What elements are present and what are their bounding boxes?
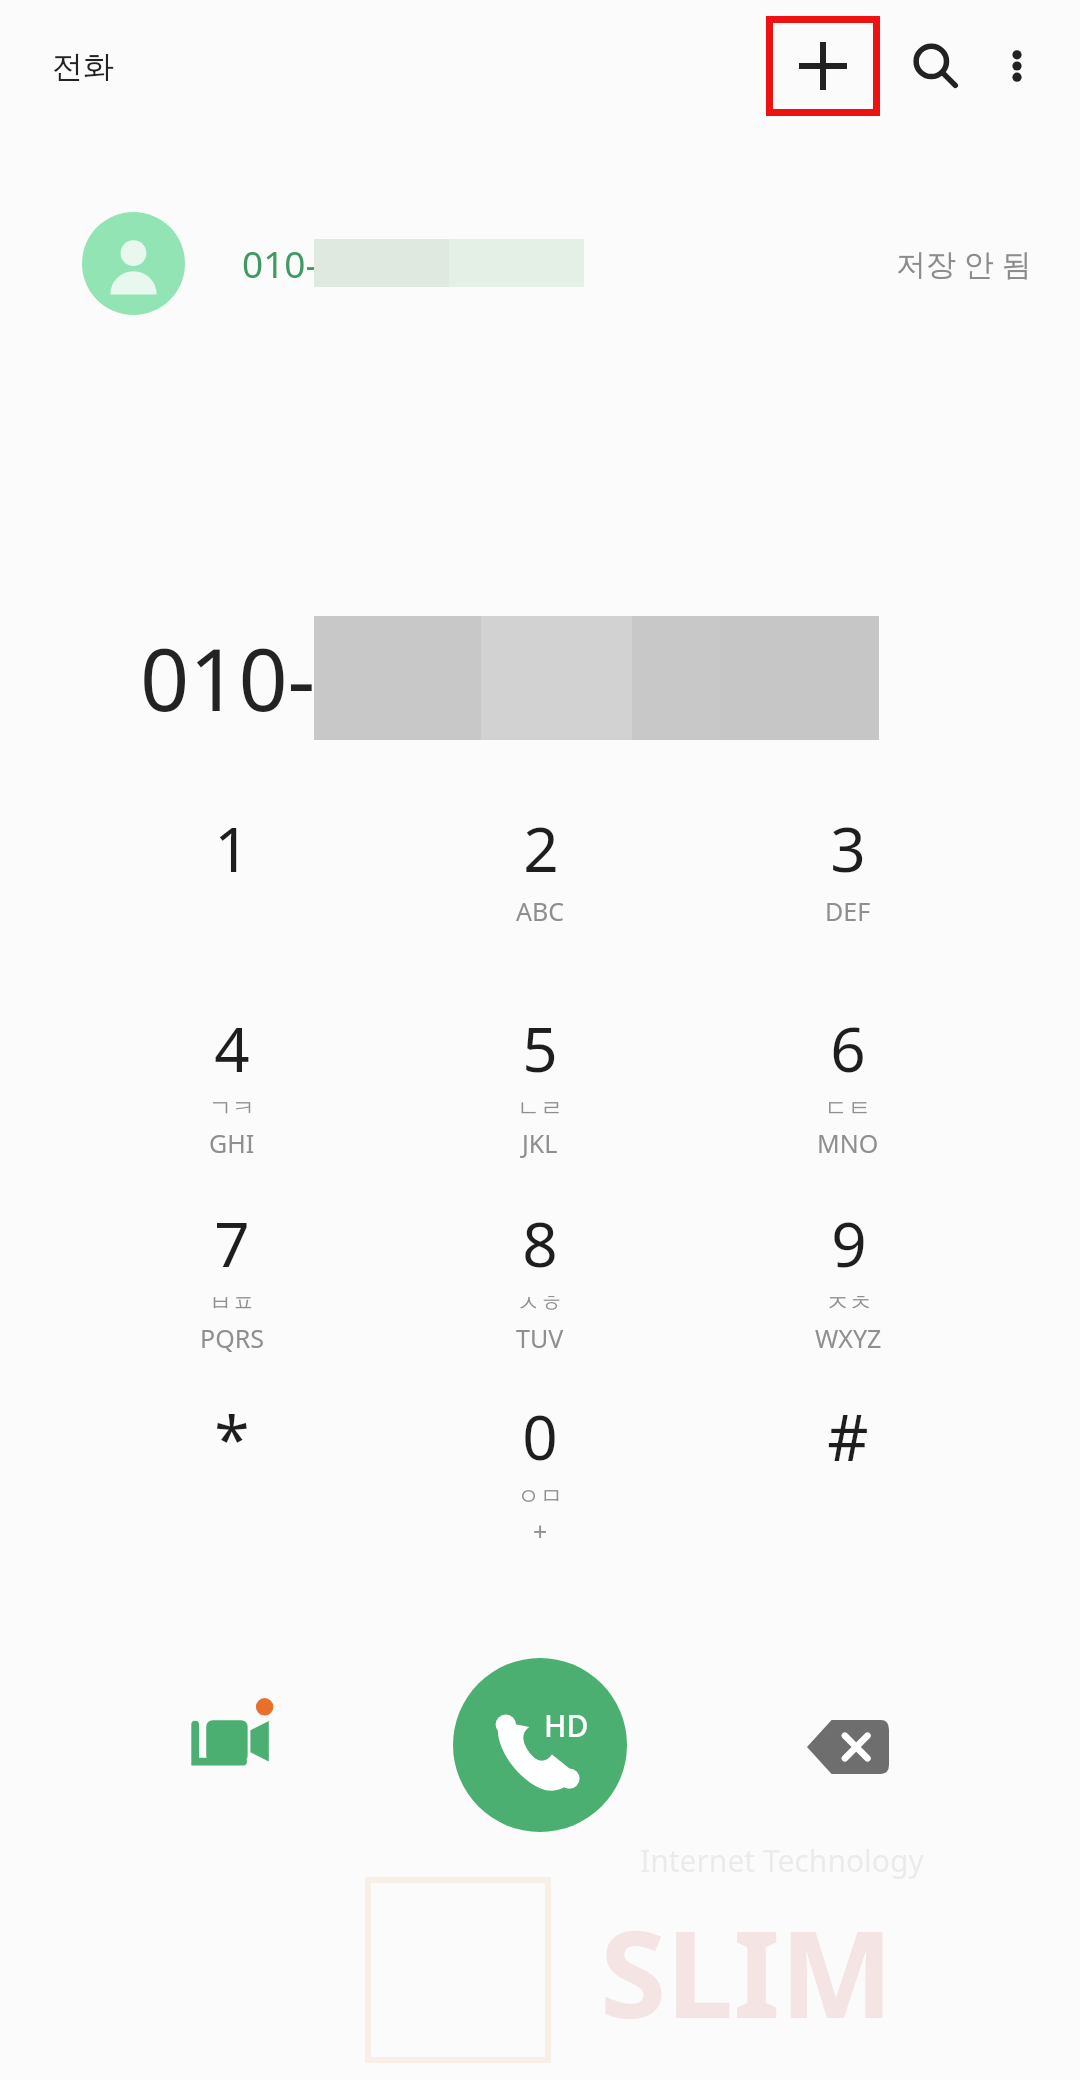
staticText: +	[533, 1514, 548, 1548]
button[interactable]: 6	[694, 1002, 1002, 1178]
button[interactable]: 010-	[0, 196, 1080, 330]
button[interactable]: Call	[453, 1658, 627, 1832]
staticText: 010-	[140, 619, 316, 736]
button[interactable]: 1	[78, 802, 386, 978]
staticText: *	[214, 1395, 250, 1482]
button[interactable]: 8	[386, 1197, 694, 1373]
staticText: ㄴㄹ	[517, 1094, 563, 1123]
staticText: #	[827, 1393, 869, 1480]
staticText: 9	[831, 1201, 867, 1285]
staticText: 5	[522, 1006, 558, 1090]
staticText: PQRS	[200, 1321, 264, 1355]
button[interactable]: Add contact	[766, 16, 880, 116]
staticText: ABC	[516, 894, 565, 928]
staticText: 6	[830, 1006, 866, 1090]
staticText: 2	[523, 806, 559, 890]
button[interactable]: *	[78, 1390, 386, 1566]
button[interactable]: 9	[694, 1197, 1002, 1373]
staticText: ㅈㅊ	[826, 1289, 872, 1318]
staticText: 3	[830, 806, 866, 890]
staticText: 4	[214, 1006, 250, 1090]
button[interactable]: Delete	[768, 1677, 928, 1817]
staticText: ㄱㅋ	[209, 1094, 255, 1123]
staticText: GHI	[209, 1126, 255, 1160]
staticText: HD	[544, 1705, 589, 1746]
button[interactable]: Video call	[152, 1665, 312, 1825]
staticText: MNO	[817, 1126, 879, 1160]
staticText: ㄷㅌ	[825, 1094, 871, 1123]
button[interactable]: 4	[78, 1002, 386, 1178]
staticText: 010-	[242, 238, 318, 288]
staticText: 0	[522, 1394, 558, 1478]
staticText: 7	[214, 1201, 250, 1285]
staticText: TUV	[516, 1321, 564, 1355]
button[interactable]: Search	[894, 25, 976, 107]
button[interactable]: More options	[980, 29, 1054, 103]
staticText: DEF	[825, 894, 871, 928]
staticText: 1	[214, 806, 250, 890]
button[interactable]: #	[694, 1390, 1002, 1566]
staticText: ㅂㅍ	[209, 1289, 255, 1318]
button[interactable]: 7	[78, 1197, 386, 1373]
button[interactable]: 5	[386, 1002, 694, 1178]
staticText: JKL	[522, 1126, 558, 1160]
staticText: SLIM	[600, 1890, 894, 2053]
staticText: WXYZ	[815, 1321, 882, 1355]
button[interactable]: 0	[386, 1390, 694, 1566]
staticText: ㅇㅁ	[517, 1482, 563, 1511]
staticText: 저장 안 됨	[896, 243, 1032, 284]
staticText: ㅅㅎ	[517, 1289, 563, 1318]
staticText: 8	[522, 1201, 558, 1285]
button[interactable]: 2	[386, 802, 694, 978]
button[interactable]: 3	[694, 802, 1002, 978]
staticText: Internet Technology	[640, 1840, 924, 1881]
staticText: 전화	[52, 47, 114, 86]
